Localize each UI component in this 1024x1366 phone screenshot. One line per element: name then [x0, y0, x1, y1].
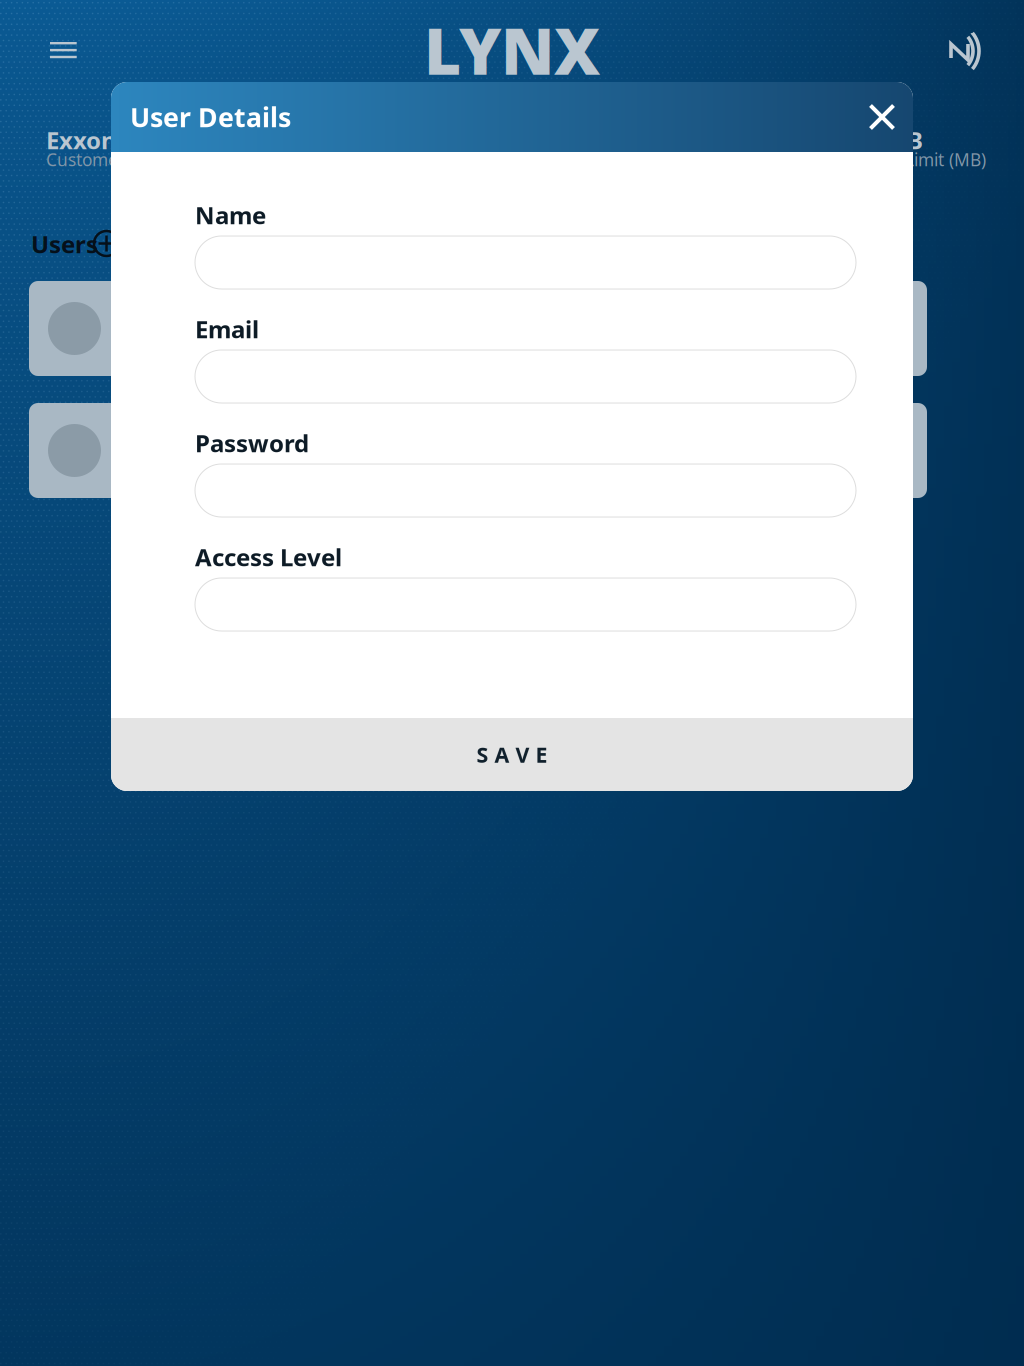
button[interactable]: Menu [27, 22, 100, 79]
button[interactable]: S A V E [111, 718, 913, 791]
staticText: Users [31, 228, 98, 260]
button[interactable]: Connect [929, 16, 1005, 86]
button[interactable] [29, 403, 927, 498]
staticText: Access Level [195, 541, 342, 573]
staticText: Exxon [46, 124, 117, 156]
staticText: S A V E [476, 740, 547, 769]
staticText: Customer Name [46, 148, 179, 171]
staticText: User Details [130, 99, 291, 135]
staticText: 500 MB [836, 124, 923, 156]
staticText: Password [195, 427, 309, 459]
staticText: Storage Limit (MB) [836, 148, 986, 171]
button[interactable]: Add user [94, 231, 119, 256]
staticText: LYNX [424, 7, 600, 92]
button[interactable] [29, 281, 927, 376]
staticText: Name [195, 199, 266, 231]
staticText: Email [195, 313, 259, 345]
button[interactable]: Close [857, 92, 913, 142]
